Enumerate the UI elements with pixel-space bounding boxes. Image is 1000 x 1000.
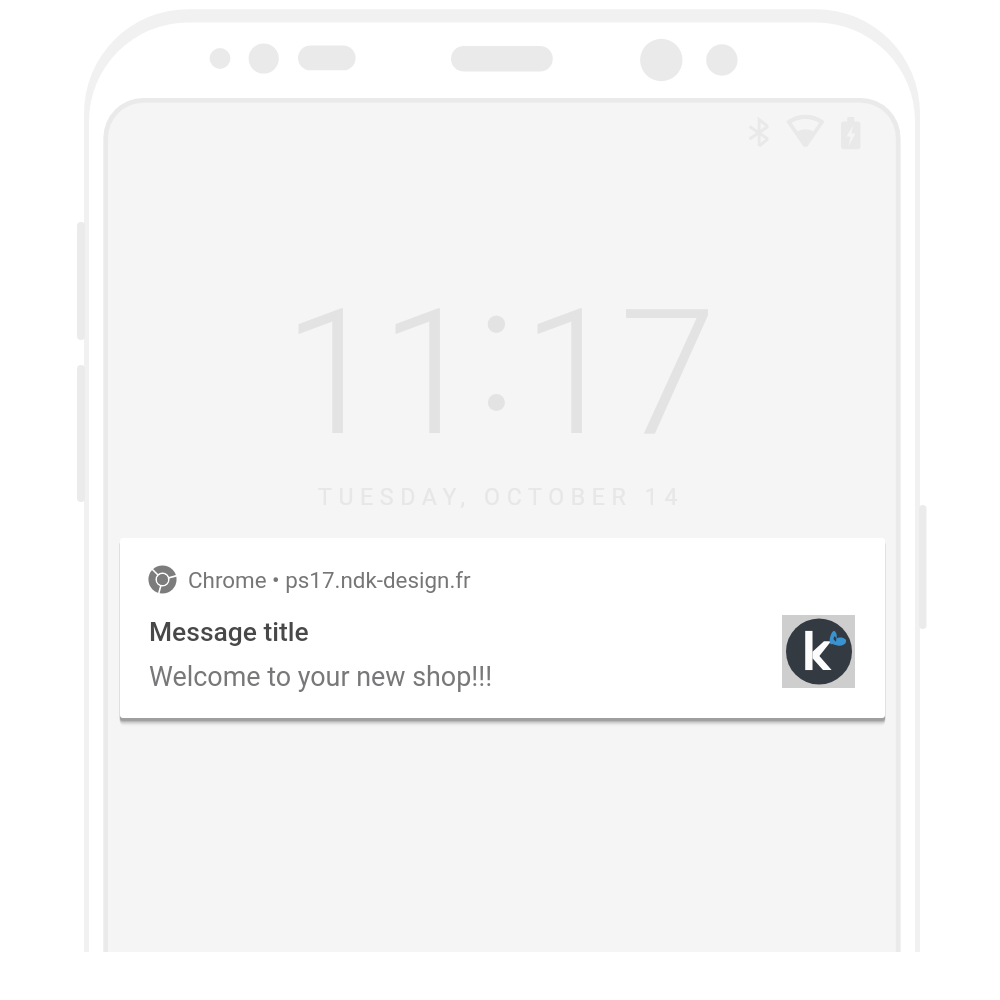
staticText: Welcome to your new shop!!!: [149, 661, 493, 693]
other: Shop logo: [782, 615, 855, 688]
button[interactable]: Chrome app icon: [120, 538, 885, 718]
staticText: TUESDAY, OCTOBER 14: [109, 483, 893, 510]
staticText: 17: [522, 271, 717, 476]
other: Status icons: [744, 114, 868, 154]
other: Chrome app icon: [148, 565, 177, 594]
staticText: Message title: [149, 617, 309, 648]
staticText: Chrome • ps17.ndk-design.fr: [188, 567, 471, 593]
staticText: 11: [283, 271, 478, 476]
